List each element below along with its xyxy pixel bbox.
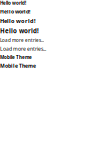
staticText: Load more entries... — [0, 37, 44, 43]
staticText: Load more entries... — [0, 45, 46, 52]
staticText: Hello world! — [0, 17, 36, 25]
staticText: Hello world! — [0, 0, 26, 6]
staticText: Hello world! — [0, 8, 30, 15]
staticText: Mobile Theme — [0, 54, 32, 60]
staticText: Mobile Theme — [0, 62, 36, 69]
staticText: Hello world! — [0, 27, 39, 35]
